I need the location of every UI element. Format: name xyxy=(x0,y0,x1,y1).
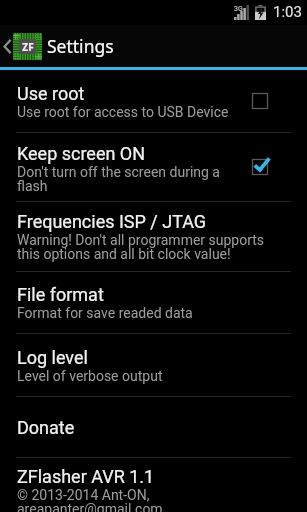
staticText: 1:03 xyxy=(273,3,302,21)
staticText: Use root xyxy=(17,83,85,104)
staticText: File format xyxy=(17,284,104,305)
button[interactable]: Frequencies ISP / JTAG xyxy=(0,202,307,271)
staticText: Frequencies ISP / JTAG xyxy=(17,211,207,232)
staticText: © 2013-2014 Ant-ON, areapanter@gmail.com xyxy=(17,487,163,512)
button[interactable]: Donate xyxy=(0,397,307,457)
button[interactable]: Navigate up xyxy=(0,33,42,60)
staticText: Use root for access to USB Device xyxy=(17,104,229,120)
staticText: ZFlasher AVR 1.1 xyxy=(17,466,155,487)
staticText: Settings xyxy=(47,34,114,58)
button[interactable]: Keep screen ON xyxy=(0,133,307,201)
button[interactable]: Use root xyxy=(0,70,307,132)
staticText: Don't turn off the screen during a flash xyxy=(17,164,245,195)
staticText: Warning! Don't all programmer supports t… xyxy=(17,232,281,263)
button[interactable]: File format xyxy=(0,272,307,333)
staticText: Donate xyxy=(17,417,75,438)
staticText: Level of verbose output xyxy=(17,368,163,384)
staticText: 3G xyxy=(234,5,243,13)
staticText: Keep screen ON xyxy=(17,143,146,164)
staticText: ZF xyxy=(22,40,34,54)
staticText: Log level xyxy=(17,347,88,368)
button[interactable]: ZFlasher AVR 1.1 xyxy=(0,458,307,512)
staticText: Format for save readed data xyxy=(17,305,193,321)
button[interactable]: Log level xyxy=(0,334,307,396)
